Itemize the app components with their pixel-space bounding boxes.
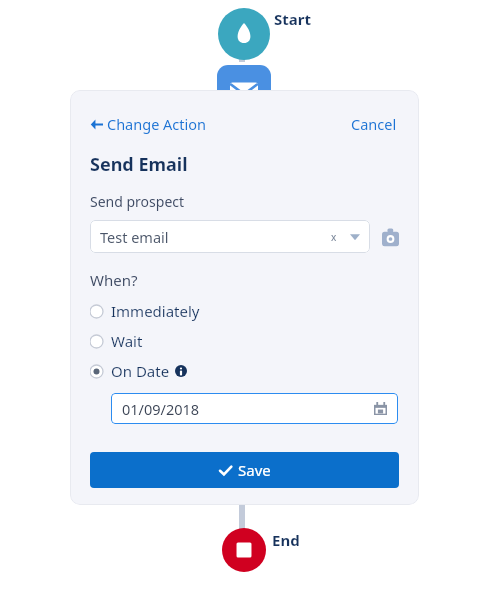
button[interactable]: 01/09/2018 [111, 393, 398, 424]
button[interactable]: Immediately [90, 300, 200, 322]
staticText: On Date [111, 361, 170, 381]
button[interactable]: Send Email action [217, 65, 271, 119]
staticText: Send Email [90, 152, 188, 177]
staticText: Save [238, 460, 271, 480]
button[interactable]: Wait [90, 330, 143, 352]
staticText: 01/09/2018 [122, 399, 200, 419]
other: Info [175, 365, 187, 377]
button[interactable]: Cancel [349, 112, 399, 136]
button[interactable]: On Date [90, 360, 187, 382]
staticText: Send prospect [90, 192, 185, 211]
staticText: x [331, 230, 337, 244]
staticText: Immediately [111, 301, 200, 321]
staticText: End [272, 530, 300, 550]
button[interactable]: Change Action [90, 112, 207, 136]
button[interactable]: Preview email [382, 227, 399, 247]
staticText: Start [274, 9, 311, 29]
button[interactable]: Save [90, 452, 399, 488]
staticText: When? [90, 270, 138, 290]
staticText: Cancel [351, 114, 397, 134]
staticText: Test email [100, 227, 169, 247]
button[interactable]: Test email [90, 220, 370, 253]
staticText: Change Action [107, 114, 207, 134]
staticText: Wait [111, 331, 143, 351]
